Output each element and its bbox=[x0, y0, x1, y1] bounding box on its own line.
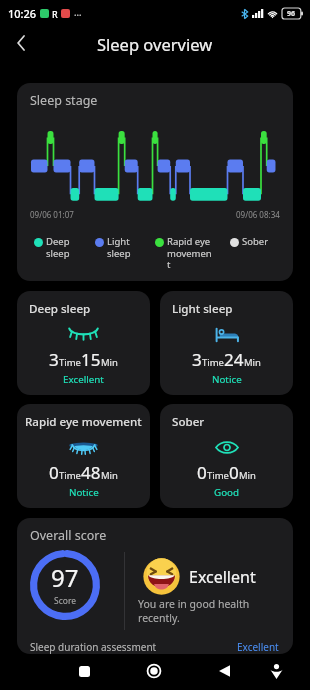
button[interactable]: Light sleep bbox=[160, 291, 293, 395]
button[interactable]: Back bbox=[5, 30, 37, 62]
button[interactable]: Deep sleep bbox=[17, 291, 150, 395]
staticText: Excellent bbox=[63, 373, 104, 386]
staticText: Min bbox=[239, 469, 256, 482]
staticText: Good bbox=[214, 486, 240, 499]
staticText: Notice bbox=[212, 373, 242, 386]
staticText: ··· bbox=[74, 8, 82, 20]
staticText: Min bbox=[101, 469, 118, 482]
staticText: 3 bbox=[49, 348, 59, 371]
staticText: Time bbox=[202, 356, 224, 369]
staticText: Sleep duration assessment bbox=[30, 640, 157, 654]
staticText: Time bbox=[59, 356, 81, 369]
staticText: 0 bbox=[197, 461, 207, 484]
button[interactable]: Sober bbox=[160, 404, 293, 508]
button[interactable]: Hide keyboard bbox=[260, 655, 292, 687]
button[interactable]: Sleep stage bbox=[17, 83, 293, 281]
staticText: 24 bbox=[224, 348, 244, 371]
staticText: Rapid eye movement bbox=[25, 414, 142, 430]
button[interactable]: Home bbox=[138, 655, 170, 687]
staticText: Excellent bbox=[237, 640, 279, 654]
button[interactable]: Overall score bbox=[17, 518, 293, 654]
staticText: R bbox=[52, 8, 58, 20]
button[interactable]: Rapid eye movement bbox=[17, 404, 150, 508]
staticText: 15 bbox=[81, 348, 101, 371]
staticText: 10:26 bbox=[8, 6, 37, 21]
staticText: 0 bbox=[49, 461, 59, 484]
staticText: 09/06 01:07 bbox=[30, 209, 74, 220]
staticText: Min bbox=[244, 356, 261, 369]
staticText: Sober bbox=[242, 235, 269, 248]
staticText: 96 bbox=[287, 9, 296, 19]
staticText: 09/06 08:34 bbox=[236, 209, 280, 220]
staticText: Min bbox=[101, 356, 118, 369]
staticText: Rapid eye movemen t bbox=[167, 235, 212, 271]
staticText: 48 bbox=[81, 461, 101, 484]
staticText: Light sleep bbox=[172, 301, 233, 317]
staticText: Time bbox=[59, 469, 81, 482]
staticText: You are in good health recently. bbox=[138, 597, 250, 625]
button[interactable]: Back bbox=[208, 655, 240, 687]
staticText: Score bbox=[54, 595, 77, 607]
staticText: Sober bbox=[172, 414, 205, 430]
staticText: 0 bbox=[229, 461, 239, 484]
staticText: Light sleep bbox=[107, 235, 131, 260]
staticText: Sleep overview bbox=[97, 33, 213, 55]
staticText: Excellent bbox=[189, 566, 256, 588]
button[interactable]: Recents bbox=[68, 655, 100, 687]
staticText: Notice bbox=[69, 486, 99, 499]
staticText: 3 bbox=[192, 348, 202, 371]
staticText: Overall score bbox=[30, 527, 107, 544]
staticText: Deep sleep bbox=[46, 235, 70, 260]
staticText: 97 bbox=[51, 561, 79, 594]
staticText: Deep sleep bbox=[29, 301, 91, 317]
staticText: Sleep stage bbox=[30, 92, 98, 109]
staticText: Time bbox=[207, 469, 229, 482]
